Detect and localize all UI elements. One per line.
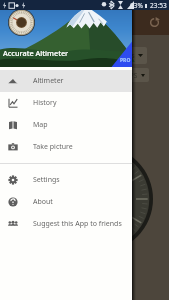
staticText: PRO	[120, 57, 131, 64]
button[interactable]: meters	[85, 47, 147, 64]
button[interactable]: Refresh	[149, 17, 160, 28]
button[interactable]: About	[0, 191, 132, 213]
button[interactable]: Altimeter	[0, 70, 132, 92]
staticText: Altimeter	[33, 76, 64, 86]
button[interactable]: Open navigation drawer	[5, 17, 17, 29]
staticText: Accurate Altimeter	[22, 17, 94, 28]
button[interactable]: Suggest this App to friends	[0, 213, 132, 235]
staticText: Suggest this App to friends	[33, 219, 122, 229]
staticText: GPS	[125, 71, 138, 80]
staticText: 23:53	[150, 1, 167, 10]
button[interactable]: Settings	[0, 169, 132, 191]
staticText: Take picture	[33, 142, 73, 152]
staticText: Settings	[33, 175, 60, 185]
staticText: 63%	[130, 1, 143, 10]
button[interactable]: Take picture	[0, 136, 132, 158]
staticText: About	[33, 197, 53, 207]
staticText: meters	[113, 51, 135, 60]
staticText: Map	[33, 120, 48, 130]
button[interactable]: GPS	[87, 68, 149, 82]
button[interactable]: History	[0, 92, 132, 114]
staticText: Accurate Altimeter	[3, 48, 69, 58]
button[interactable]: Map	[0, 114, 132, 136]
staticText: History	[33, 98, 57, 108]
